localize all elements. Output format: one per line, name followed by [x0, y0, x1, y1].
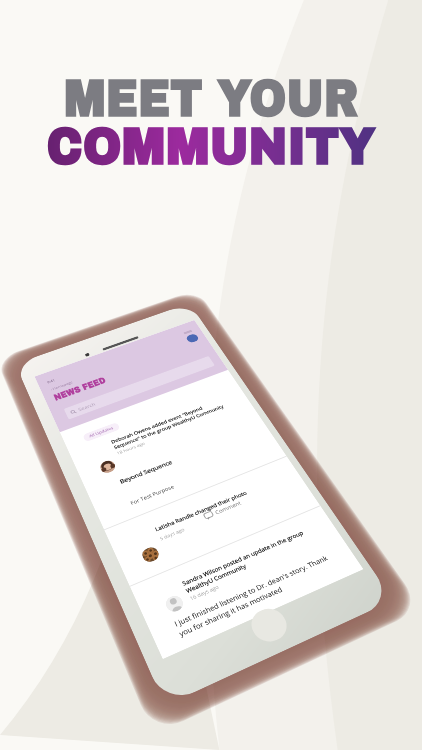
button[interactable]: Back to homepage [50, 380, 74, 391]
staticText: COMMUNITY [18, 119, 404, 174]
staticText: 9:41 [46, 378, 56, 384]
staticText: 16 days ago [189, 583, 221, 602]
staticText: All Updates [88, 425, 115, 439]
button[interactable]: Deborah Owens added event "Beyond Sequen… [110, 398, 226, 451]
staticText: ‹ Homepage [50, 380, 74, 391]
staticText: 18 hours ago [116, 441, 146, 456]
staticText: 5 days ago [159, 526, 186, 542]
button[interactable]: Latisha Randle changed their photo [154, 489, 248, 533]
staticText: MEET YOUR [26, 71, 396, 126]
staticText: Search [77, 401, 96, 413]
button[interactable]: Sandra Wilson posted an update in the gr… [181, 529, 310, 595]
staticText: I just finished listening to Dr. dean's … [173, 553, 335, 638]
button[interactable]: Search [63, 356, 215, 420]
button[interactable]: All Updates [82, 422, 121, 442]
staticText: For Test Purpose [129, 483, 176, 507]
button[interactable]: Comment [203, 499, 243, 520]
staticText: Comment [214, 499, 243, 516]
staticText: NEWS FEED [52, 375, 108, 402]
staticText: Beyond Sequence [118, 458, 174, 485]
button[interactable]: Profile [185, 333, 200, 344]
